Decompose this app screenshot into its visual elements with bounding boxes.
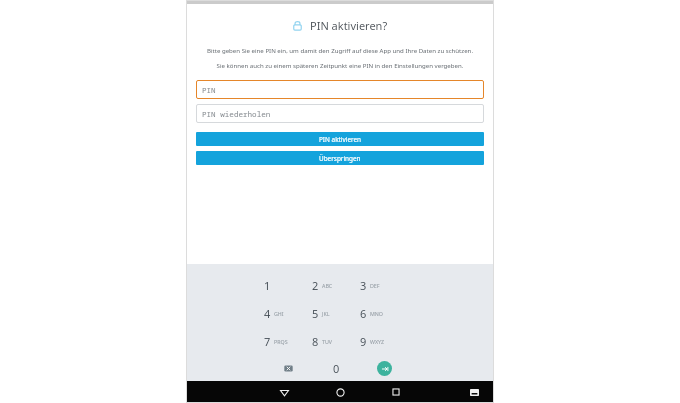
button[interactable]: 8 [312,327,360,355]
button[interactable]: 7 [264,327,312,355]
staticText: JKL [322,310,330,317]
button[interactable]: Keyboard [464,382,484,402]
button[interactable]: Recents [381,381,411,403]
staticText: 8 [312,334,319,349]
staticText: GHI [274,310,284,317]
staticText: TUV [322,338,332,345]
staticText: 5 [312,306,319,321]
button[interactable]: PIN [196,80,484,99]
staticText: 9 [360,334,367,349]
staticText: PRQS [274,338,288,345]
staticText: 4 [264,306,271,321]
button[interactable]: 4 [264,299,312,327]
staticText: MNO [370,310,383,317]
button[interactable]: Back [269,381,299,403]
staticText: 6 [360,306,367,321]
staticText: PIN aktivieren? [310,18,388,33]
button[interactable]: PIN aktivieren [196,132,484,146]
button[interactable]: 3 [360,271,408,299]
staticText: PIN aktivieren [319,135,362,144]
button[interactable]: 2 [312,271,360,299]
staticText: 3 [360,278,367,293]
staticText: DEF [370,282,380,289]
button[interactable]: 9 [360,327,408,355]
staticText: 0 [333,361,340,376]
button[interactable]: PIN wiederholen [196,104,484,123]
staticText: 7 [264,334,271,349]
button[interactable]: 0 [312,355,360,381]
staticText: WXYZ [370,338,385,345]
button[interactable]: 6 [360,299,408,327]
staticText: 2 [312,278,319,293]
staticText: Bitte geben Sie eine PIN ein, um damit d… [198,46,482,54]
button[interactable]: Überspringen [196,151,484,165]
staticText: PIN [202,85,216,95]
staticText: PIN wiederholen [202,109,271,119]
button[interactable]: Home [325,381,355,403]
staticText: 1 [264,278,271,293]
staticText: Sie können auch zu einem späteren Zeitpu… [198,61,482,69]
button[interactable]: 5 [312,299,360,327]
button[interactable]: Backspace [264,355,312,381]
button[interactable]: 1 [264,271,312,299]
staticText: Überspringen [319,154,361,163]
button[interactable]: Enter [360,355,408,381]
staticText: ABC [322,282,333,289]
